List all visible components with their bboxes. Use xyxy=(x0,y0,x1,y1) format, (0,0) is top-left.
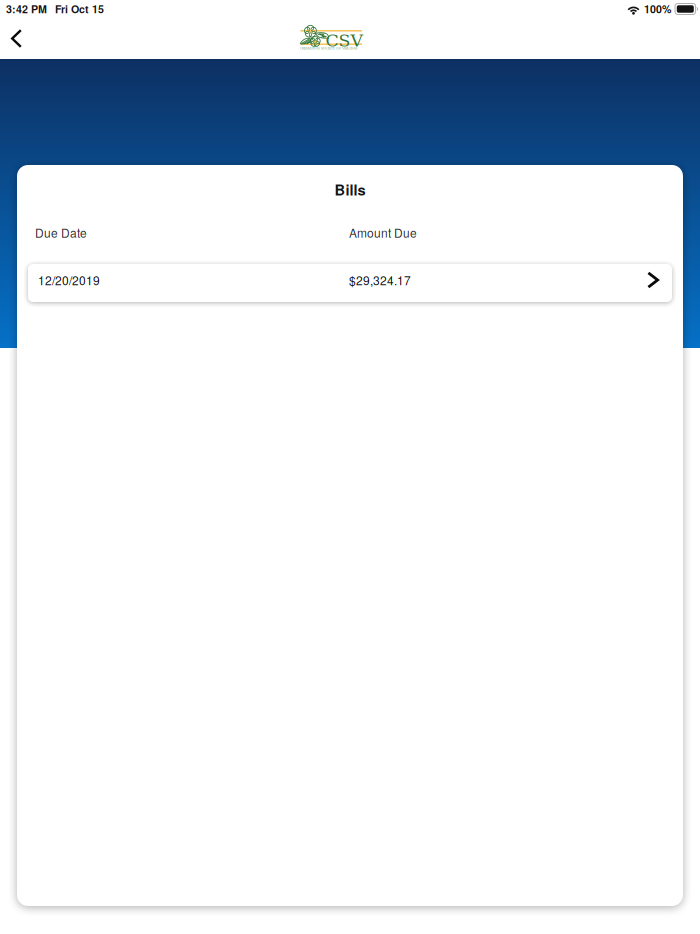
button[interactable]: Back xyxy=(0,21,36,56)
staticText: 12/20/2019 xyxy=(38,271,100,289)
staticText: Amount Due xyxy=(349,224,417,241)
button[interactable]: 12/20/2019 xyxy=(28,264,672,302)
staticText: Bills xyxy=(334,179,365,200)
staticText: 3:42 PM xyxy=(6,1,47,17)
staticText: CREMATION SOCIETY OF VIRGINIA xyxy=(300,46,357,50)
staticText: 100% xyxy=(644,1,671,17)
staticText: Due Date xyxy=(35,224,87,241)
staticText: $29,324.17 xyxy=(349,271,411,289)
staticText: Fri Oct 15 xyxy=(55,1,104,17)
staticText: CSV xyxy=(325,30,363,51)
